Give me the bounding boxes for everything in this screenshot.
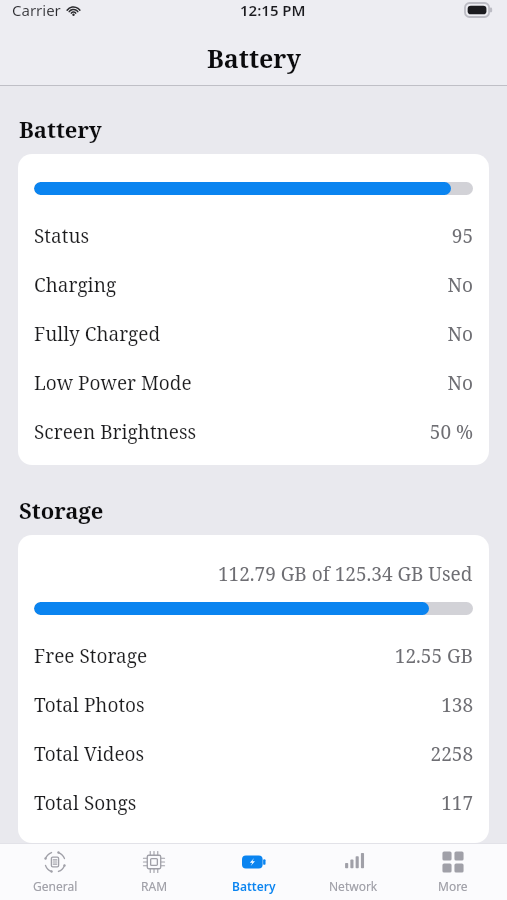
staticText: Total Songs	[34, 790, 137, 816]
staticText: 138	[441, 692, 473, 718]
button[interactable]: Total Songs	[34, 778, 473, 827]
staticText: Screen Brightness	[34, 419, 197, 445]
other: Battery	[242, 850, 266, 874]
staticText: General	[33, 878, 78, 894]
staticText: 95	[451, 223, 473, 249]
button[interactable]: Screen Brightness	[34, 407, 473, 456]
other: Network	[341, 850, 365, 874]
staticText: 12:15 PM	[240, 0, 306, 20]
staticText: Status	[34, 223, 90, 249]
staticText: 50 %	[429, 419, 473, 445]
staticText: Battery	[19, 114, 102, 144]
staticText: More	[438, 878, 468, 894]
staticText: No	[447, 321, 473, 347]
staticText: RAM	[141, 878, 168, 894]
staticText: Free Storage	[34, 643, 148, 669]
staticText: Battery	[232, 878, 276, 894]
staticText: 112.79 GB of 125.34 GB Used	[218, 561, 473, 587]
staticText: 117	[441, 790, 473, 816]
staticText: Fully Charged	[34, 321, 161, 347]
staticText: Network	[329, 878, 378, 894]
staticText: 12.55 GB	[394, 643, 473, 669]
other: More	[441, 850, 465, 874]
button[interactable]: Total Videos	[34, 729, 473, 778]
staticText: Low Power Mode	[34, 370, 192, 396]
button[interactable]: Battery	[209, 844, 299, 900]
button[interactable]: More	[408, 844, 498, 900]
staticText: Total Photos	[34, 692, 145, 718]
button[interactable]: Total Photos	[34, 680, 473, 729]
staticText: Battery	[207, 41, 301, 75]
button[interactable]: General	[10, 844, 100, 900]
button[interactable]: RAM	[109, 844, 199, 900]
staticText: No	[447, 272, 473, 298]
staticText: Charging	[34, 272, 117, 298]
staticText: 2258	[430, 741, 473, 767]
button[interactable]: Status	[34, 211, 473, 260]
button[interactable]: Network	[308, 844, 398, 900]
staticText: Total Videos	[34, 741, 145, 767]
other: General	[43, 850, 67, 874]
staticText: No	[447, 370, 473, 396]
button[interactable]: Charging	[34, 260, 473, 309]
staticText: Carrier	[12, 0, 61, 20]
button[interactable]: Fully Charged	[34, 309, 473, 358]
other: RAM	[142, 850, 166, 874]
button[interactable]: Low Power Mode	[34, 358, 473, 407]
button[interactable]: Free Storage	[34, 631, 473, 680]
staticText: Storage	[19, 495, 104, 525]
